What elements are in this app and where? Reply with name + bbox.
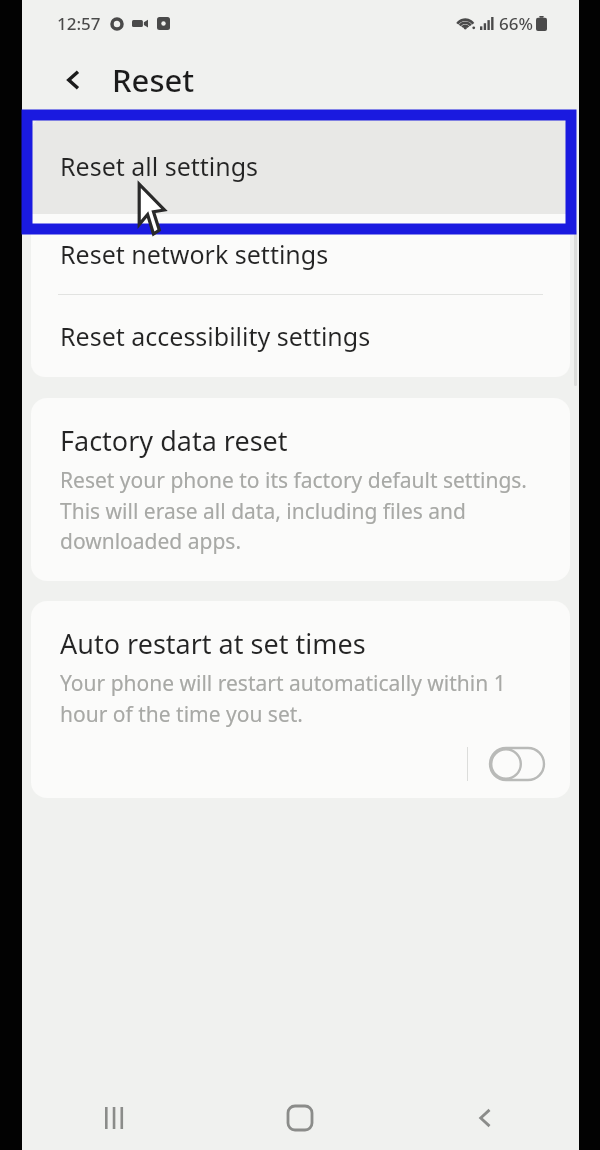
staticText: Auto restart at set times — [60, 625, 366, 662]
button[interactable]: Home — [207, 1086, 393, 1150]
staticText: Reset all settings — [60, 149, 259, 183]
staticText: Reset — [112, 59, 195, 101]
button[interactable]: Back — [52, 58, 96, 102]
button[interactable]: Auto restart toggle — [488, 744, 546, 784]
staticText: Reset accessibility settings — [60, 319, 371, 353]
button[interactable]: Factory data reset — [31, 398, 570, 581]
button[interactable]: Reset all settings — [31, 118, 570, 214]
button[interactable]: Reset accessibility settings — [31, 295, 570, 377]
button[interactable]: Reset network settings — [31, 214, 570, 294]
button[interactable]: Recents — [22, 1086, 207, 1150]
staticText: Your phone will restart automatically wi… — [60, 669, 546, 728]
staticText: Reset network settings — [60, 237, 329, 271]
staticText: 66% — [499, 12, 533, 35]
button[interactable]: Auto restart at set times — [31, 601, 570, 798]
button[interactable]: Back — [393, 1086, 579, 1150]
staticText: Reset your phone to its factory default … — [60, 466, 546, 555]
staticText: 12:57 — [57, 12, 101, 35]
staticText: Factory data reset — [60, 422, 288, 459]
